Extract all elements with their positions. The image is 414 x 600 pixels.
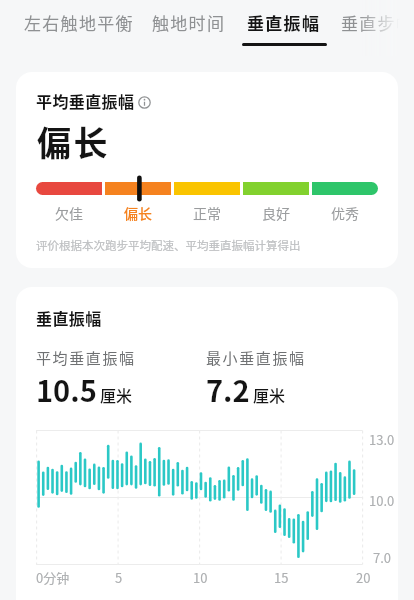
staticText: 13.0 — [369, 430, 395, 449]
staticText: 0分钟 — [36, 568, 70, 587]
staticText: 最小垂直振幅 — [206, 347, 306, 369]
button[interactable]: 垂直步幅比 — [341, 10, 414, 35]
staticText: 7.2 — [206, 368, 250, 410]
staticText: 垂直振幅 — [247, 10, 321, 35]
staticText: 垂直振幅 — [36, 306, 102, 329]
staticText: 10 — [193, 568, 208, 587]
staticText: 15 — [274, 568, 289, 587]
button[interactable] — [138, 96, 151, 109]
button[interactable]: 垂直振幅 — [242, 0, 327, 56]
staticText: 厘米 — [253, 383, 286, 406]
staticText: 优秀 — [331, 203, 359, 223]
staticText: 评价根据本次跑步平均配速、平均垂直振幅计算得出 — [36, 237, 301, 254]
staticText: 5 — [115, 568, 123, 587]
button[interactable] — [36, 175, 378, 210]
staticText: 正常 — [193, 203, 221, 223]
staticText: 10.0 — [369, 491, 395, 510]
button[interactable]: 左右触地平衡 — [24, 10, 134, 35]
staticText: 良好 — [262, 203, 290, 223]
staticText: 偏长 — [124, 203, 152, 223]
staticText: 偏长 — [37, 117, 110, 166]
staticText: 欠佳 — [55, 203, 83, 223]
button[interactable]: 触地时间 — [152, 10, 226, 35]
staticText: 10.5 — [36, 368, 97, 410]
staticText: 厘米 — [100, 383, 133, 406]
staticText: 20 — [356, 568, 371, 587]
staticText: 平均垂直振幅 — [36, 89, 135, 112]
staticText: 平均垂直振幅 — [36, 347, 136, 369]
staticText: 7.0 — [373, 548, 392, 567]
